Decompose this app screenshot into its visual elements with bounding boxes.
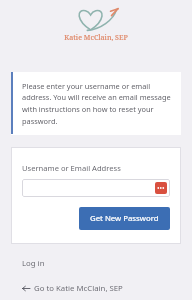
button[interactable]: Username or Email Address field [22, 179, 170, 197]
staticText: Go to Katie McClain, SEP [34, 283, 123, 294]
staticText: Please enter your username or email addr… [22, 81, 171, 126]
staticText: Log in [22, 258, 45, 269]
button[interactable]: Fill from password manager [155, 182, 167, 194]
button[interactable]: Log in [22, 258, 45, 269]
staticText: Username or Email Address [22, 163, 121, 173]
button[interactable]: Go to Katie McClain, SEP [22, 283, 123, 294]
staticText: Get New Password [90, 213, 159, 224]
button[interactable]: Get New Password [79, 207, 170, 230]
staticText: Katie McClain, SEP [64, 33, 128, 43]
button[interactable]: Katie McClain, SEP home [64, 6, 128, 43]
